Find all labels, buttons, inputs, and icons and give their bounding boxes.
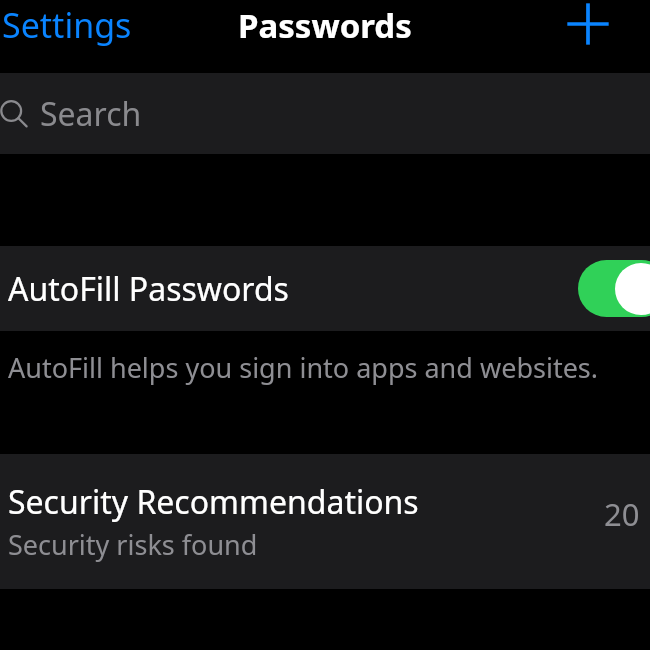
staticText: Search bbox=[40, 92, 142, 136]
staticText: Passwords bbox=[238, 3, 412, 48]
button[interactable]: Search bbox=[0, 73, 650, 154]
button[interactable]: AutoFill Passwords toggle, on bbox=[578, 260, 650, 317]
staticText: AutoFill helps you sign into apps and we… bbox=[8, 349, 599, 386]
staticText: Security Recommendations bbox=[8, 480, 419, 524]
staticText: 20 bbox=[604, 493, 640, 535]
staticText: AutoFill Passwords bbox=[8, 267, 289, 311]
button[interactable]: Settings bbox=[2, 0, 132, 50]
staticText: Settings bbox=[2, 2, 132, 48]
button[interactable]: Add password bbox=[562, 0, 614, 50]
button[interactable]: AutoFill Passwords bbox=[0, 246, 650, 331]
staticText: Security risks found bbox=[8, 526, 258, 563]
button[interactable]: Security Recommendations bbox=[0, 454, 650, 589]
